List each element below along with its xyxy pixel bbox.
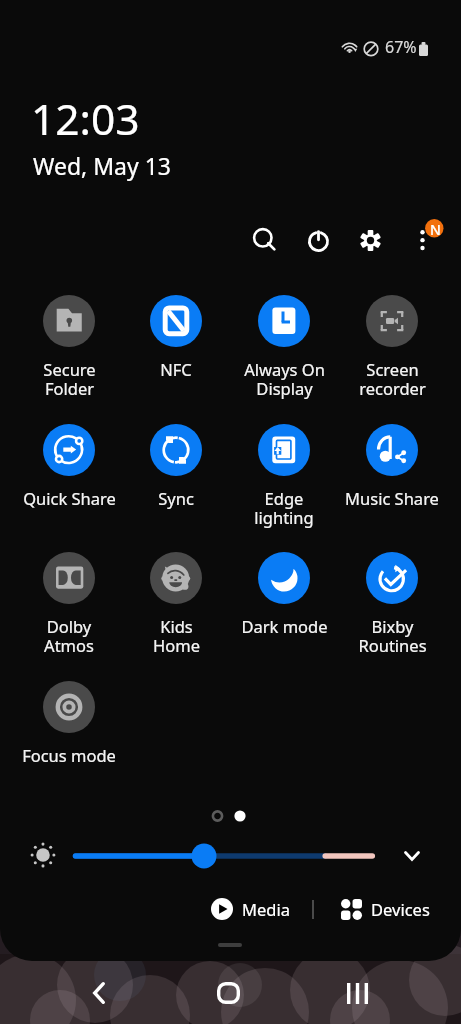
- button[interactable]: Home: [204, 969, 252, 1017]
- button[interactable]: Dolby Atmos: [15, 548, 123, 657]
- button[interactable]: Always On Display: [230, 291, 338, 400]
- staticText: Bixby Routines: [358, 615, 427, 657]
- button[interactable]: NFC: [122, 291, 230, 380]
- button[interactable]: Sync: [122, 420, 230, 509]
- staticText: Devices: [371, 898, 430, 920]
- button[interactable]: Screen recorder: [338, 291, 446, 400]
- staticText: Wed, May 13: [33, 150, 171, 181]
- button[interactable]: Edge lighting: [230, 420, 338, 529]
- button[interactable]: Brightness: [70, 838, 378, 874]
- staticText: Edge lighting: [254, 487, 314, 529]
- button[interactable]: Bixby Routines: [338, 548, 446, 657]
- staticText: N: [430, 220, 441, 239]
- staticText: Music Share: [345, 487, 439, 509]
- staticText: NFC: [160, 358, 192, 380]
- button[interactable]: Devices: [335, 892, 436, 926]
- staticText: Dolby Atmos: [44, 615, 94, 657]
- button[interactable]: Settings: [346, 216, 394, 264]
- staticText: Sync: [158, 487, 194, 509]
- button[interactable]: Expand brightness settings: [394, 838, 430, 874]
- button[interactable]: Search: [242, 217, 290, 265]
- staticText: Media: [242, 898, 290, 920]
- button[interactable]: Music Share: [338, 420, 446, 509]
- button[interactable]: Dark mode: [230, 548, 338, 637]
- button[interactable]: More options: [400, 216, 448, 264]
- button[interactable]: Quick Share: [15, 420, 123, 509]
- staticText: Secure Folder: [43, 358, 96, 400]
- staticText: Kids Home: [153, 615, 200, 657]
- button[interactable]: Back: [75, 969, 123, 1017]
- staticText: 67%: [385, 36, 417, 58]
- staticText: Focus mode: [22, 744, 116, 766]
- staticText: Always On Display: [244, 358, 325, 400]
- button[interactable]: Focus mode: [15, 677, 123, 766]
- staticText: Quick Share: [23, 487, 116, 509]
- button[interactable]: Media: [205, 892, 296, 926]
- button[interactable]: Recents: [333, 969, 381, 1017]
- staticText: Dark mode: [241, 615, 328, 637]
- button[interactable]: Kids Home: [122, 548, 230, 657]
- staticText: 12:03: [31, 90, 140, 148]
- staticText: Screen recorder: [359, 358, 426, 400]
- button[interactable]: Power: [294, 217, 342, 265]
- button[interactable]: Secure Folder: [15, 291, 123, 400]
